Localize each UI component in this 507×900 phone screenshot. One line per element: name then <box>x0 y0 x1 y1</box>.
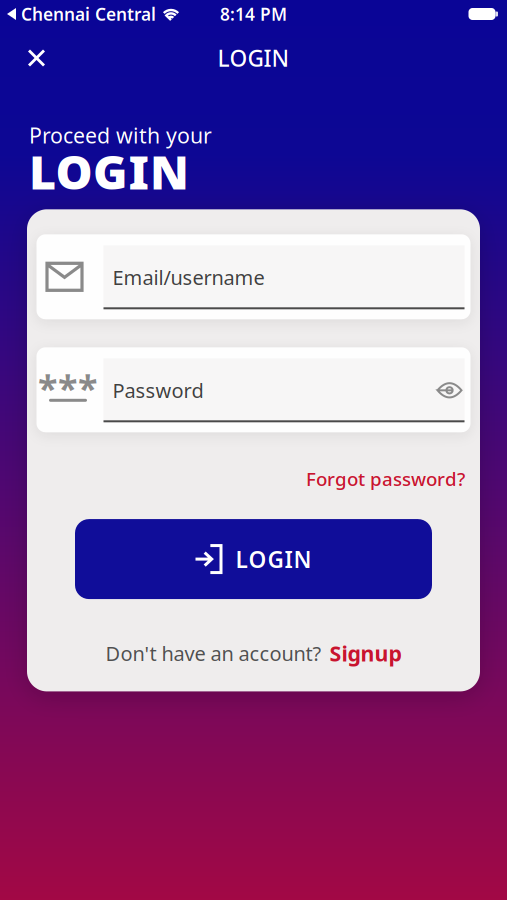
button[interactable]: Show password <box>437 383 464 398</box>
staticText: Proceed with your <box>29 121 212 149</box>
staticText: 8:14 PM <box>220 2 287 25</box>
staticText: Signup <box>329 639 401 667</box>
staticText: LOGIN <box>235 544 311 574</box>
staticText: Don't have an account? <box>105 640 321 667</box>
staticText: Email/username <box>112 264 264 291</box>
staticText: Chennai Central <box>21 2 156 25</box>
staticText: LOGIN <box>217 43 289 73</box>
button[interactable]: Forgot password? <box>306 466 465 491</box>
button[interactable]: Close <box>0 50 44 65</box>
button[interactable]: Return to Chennai Central <box>7 2 181 25</box>
staticText: *** <box>38 363 98 411</box>
button[interactable]: LOGIN <box>75 519 432 599</box>
staticText: Forgot password? <box>306 466 465 491</box>
staticText: Password <box>112 377 203 404</box>
button[interactable]: Don't have an account? <box>105 639 401 667</box>
staticText: LOGIN <box>29 140 189 202</box>
